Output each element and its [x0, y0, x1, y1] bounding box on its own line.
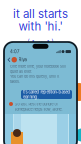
staticText: quiet as ever. — [10, 69, 32, 74]
staticText: One more time, your notebook still — [10, 64, 66, 69]
staticText: Go fast. Rest the bundle of — [14, 102, 57, 106]
staticText: it all starts — [13, 7, 68, 21]
staticText: takes. — [10, 79, 20, 84]
staticText: It's called repetition-based learning. — [22, 89, 70, 99]
staticText: someplace helps flow, alone. — [14, 107, 62, 111]
staticText: ( • ᴗ • ) — [27, 37, 53, 45]
staticText: with 'hi.' — [18, 19, 62, 33]
staticText: Riya — [18, 57, 26, 62]
staticText: 4:07 — [10, 49, 19, 54]
staticText: You can do this quietly, until it — [10, 74, 59, 79]
